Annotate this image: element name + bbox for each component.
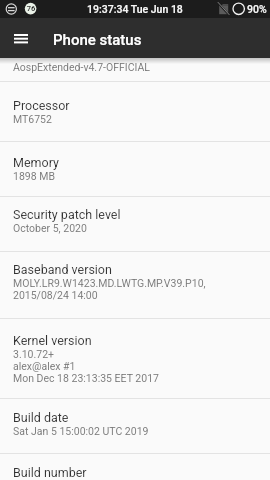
staticText: October 5, 2020 xyxy=(13,222,87,234)
staticText: Mon Dec 18 23:13:35 EET 2017 xyxy=(13,372,159,384)
staticText: 3.10.72+ xyxy=(13,348,55,360)
staticText: 2015/08/24 14:00 xyxy=(13,289,98,301)
button[interactable]: Processor xyxy=(0,82,270,141)
staticText: 1898 MB xyxy=(13,170,55,182)
staticText: Baseband version xyxy=(13,262,112,277)
button[interactable]: Baseband version xyxy=(0,252,270,318)
staticText: MOLY.LR9.W1423.MD.LWTG.MP.V39.P10, xyxy=(13,277,206,289)
staticText: Security patch level xyxy=(13,207,121,222)
staticText: 19:37:34 Tue Jun 18 xyxy=(87,3,183,15)
button[interactable]: Memory xyxy=(0,142,270,196)
staticText: Sat Jan 5 15:00:02 UTC 2019 xyxy=(13,425,149,437)
button[interactable]: Build date xyxy=(0,399,270,453)
staticText: 90% xyxy=(247,3,267,15)
button[interactable]: Open navigation menu xyxy=(0,18,40,58)
staticText: Build number xyxy=(13,465,87,480)
staticText: alex@alex #1 xyxy=(13,360,76,372)
staticText: Memory xyxy=(13,155,59,170)
staticText: Kernel version xyxy=(13,333,92,348)
button[interactable]: Build number xyxy=(0,454,270,480)
staticText: 76 xyxy=(23,4,39,13)
button[interactable]: Kernel version xyxy=(0,319,270,398)
staticText: Phone status xyxy=(53,31,142,49)
staticText: Processor xyxy=(13,98,70,113)
staticText: AospExtended-v4.7-OFFICIAL xyxy=(13,61,150,73)
staticText: Build date xyxy=(13,410,69,425)
staticText: MT6752 xyxy=(13,113,52,125)
button[interactable]: AospExtended-v4.7-OFFICIAL xyxy=(0,58,270,81)
button[interactable]: Security patch level xyxy=(0,197,270,251)
